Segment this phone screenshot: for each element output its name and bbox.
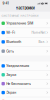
staticText: HomeNet: [32, 31, 46, 34]
button[interactable]: Обои: [0, 97, 50, 100]
button[interactable]: Wi-Fi: [0, 28, 50, 37]
staticText: 9:41: [2, 1, 8, 5]
staticText: Не беспокоить: [6, 82, 31, 86]
staticText: Wi-Fi: [6, 31, 15, 35]
staticText: Вкл.: [39, 40, 46, 44]
staticText: Bluetooth: [6, 40, 21, 44]
button[interactable]: Звуки: [0, 70, 50, 79]
staticText: Экран: [6, 91, 16, 95]
button[interactable]: Сеть: [0, 47, 50, 56]
button[interactable]: Экран: [0, 88, 50, 97]
staticText: СИСТЕМНЫЕ НАСТРОЙКИ: [2, 14, 39, 17]
staticText: Сеть: [6, 49, 14, 53]
staticText: Настройки: [15, 6, 34, 10]
button[interactable]: Не беспокоить: [0, 79, 50, 88]
staticText: Уведомления: [6, 64, 29, 68]
staticText: Звуки: [6, 73, 16, 77]
staticText: Управление SIM: [6, 21, 33, 25]
button[interactable]: Bluetooth: [0, 37, 50, 46]
button[interactable]: Управление SIM: [0, 19, 50, 28]
button[interactable]: Уведомления: [0, 62, 50, 70]
